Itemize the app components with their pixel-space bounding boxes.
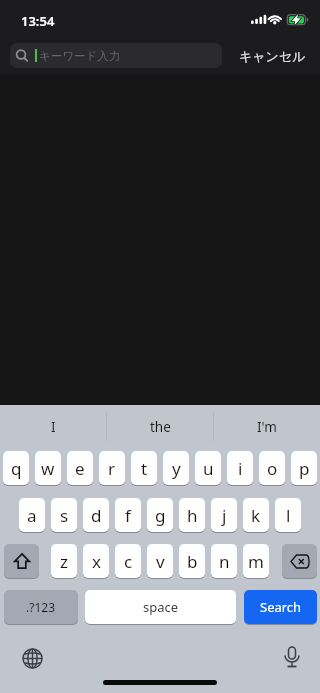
button[interactable]: j — [211, 498, 237, 532]
staticText: r — [108, 457, 116, 480]
staticText: n — [219, 550, 230, 573]
button[interactable]: I'm — [214, 405, 320, 449]
staticText: Search — [260, 598, 302, 616]
staticText: the — [150, 418, 171, 436]
staticText: w — [41, 457, 55, 480]
button[interactable]: Search — [244, 590, 317, 624]
staticText: u — [203, 457, 214, 480]
staticText: p — [299, 457, 310, 480]
button[interactable]: space — [85, 590, 236, 624]
button[interactable]: f — [115, 498, 141, 532]
staticText: space — [143, 598, 179, 616]
staticText: t — [141, 457, 148, 480]
staticText: k — [251, 504, 261, 527]
staticText: h — [187, 504, 198, 527]
staticText: I — [51, 418, 56, 436]
button[interactable]: e — [67, 451, 93, 485]
staticText: c — [124, 550, 133, 573]
staticText: m — [248, 550, 264, 573]
button[interactable]: z — [51, 544, 77, 578]
staticText: I'm — [257, 418, 277, 436]
staticText: x — [92, 550, 101, 573]
button[interactable]: a — [19, 498, 45, 532]
button[interactable]: m — [243, 544, 269, 578]
button[interactable]: h — [179, 498, 205, 532]
staticText: v — [156, 550, 165, 573]
staticText: g — [155, 504, 166, 527]
button[interactable]: .?123 — [4, 590, 78, 624]
staticText: d — [91, 504, 102, 527]
staticText: e — [75, 457, 85, 480]
staticText: f — [125, 504, 131, 527]
staticText: 13:54 — [21, 12, 55, 30]
staticText: b — [187, 550, 198, 573]
button[interactable]: キーワード入力 — [10, 43, 222, 68]
button[interactable]: d — [83, 498, 109, 532]
staticText: a — [27, 504, 37, 527]
button[interactable]: v — [147, 544, 173, 578]
button[interactable] — [282, 544, 317, 578]
staticText: i — [238, 457, 243, 480]
staticText: q — [11, 457, 22, 480]
staticText: y — [172, 457, 181, 480]
button[interactable] — [12, 638, 52, 678]
staticText: .?123 — [26, 599, 56, 615]
button[interactable]: o — [259, 451, 285, 485]
button[interactable]: w — [35, 451, 61, 485]
button[interactable]: the — [107, 405, 213, 449]
button[interactable] — [4, 544, 39, 578]
button[interactable]: y — [163, 451, 189, 485]
button[interactable]: k — [243, 498, 269, 532]
button[interactable]: キャンセル — [232, 43, 312, 68]
button[interactable]: b — [179, 544, 205, 578]
staticText: キーワード入力 — [39, 49, 121, 63]
button[interactable]: x — [83, 544, 109, 578]
staticText: l — [286, 504, 291, 527]
button[interactable]: s — [51, 498, 77, 532]
button[interactable]: g — [147, 498, 173, 532]
button[interactable]: n — [211, 544, 237, 578]
button[interactable]: u — [195, 451, 221, 485]
button[interactable]: i — [227, 451, 253, 485]
button[interactable] — [272, 638, 312, 678]
staticText: キャンセル — [239, 48, 306, 64]
button[interactable]: t — [131, 451, 157, 485]
button[interactable]: q — [3, 451, 29, 485]
button[interactable]: r — [99, 451, 125, 485]
button[interactable]: c — [115, 544, 141, 578]
staticText: j — [222, 504, 227, 527]
staticText: o — [267, 457, 278, 480]
button[interactable]: p — [291, 451, 317, 485]
staticText: z — [60, 550, 68, 573]
staticText: s — [60, 504, 69, 527]
button[interactable]: l — [275, 498, 301, 532]
button[interactable]: I — [0, 405, 106, 449]
